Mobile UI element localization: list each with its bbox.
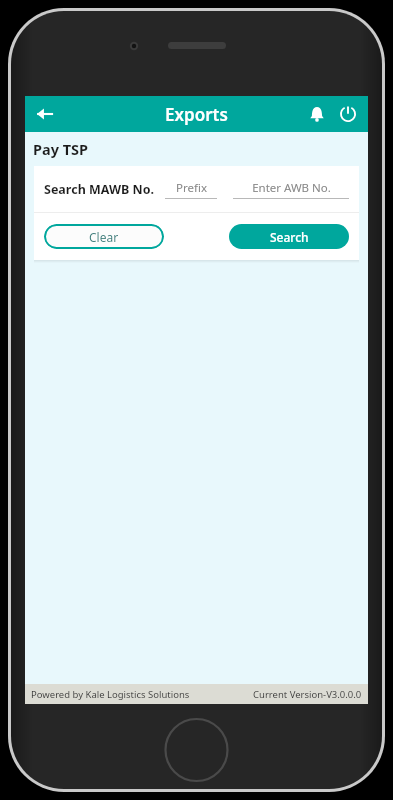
button[interactable]: Logout [332, 96, 364, 132]
staticText: Pay TSP [33, 139, 89, 159]
staticText: Enter AWB No. [252, 180, 331, 196]
staticText: Current Version-V3.0.0.0 [253, 688, 362, 701]
button[interactable]: Search [229, 224, 349, 249]
staticText: Prefix [176, 180, 207, 196]
button[interactable]: Clear [44, 224, 164, 249]
staticText: Clear [89, 229, 119, 245]
staticText: Powered by Kale Logistics Solutions [31, 688, 190, 701]
button[interactable]: Notifications [302, 96, 332, 132]
staticText: Search MAWB No. [44, 181, 155, 198]
button[interactable]: Prefix [165, 179, 217, 196]
button[interactable]: Back [25, 96, 65, 132]
staticText: Exports [165, 103, 228, 126]
staticText: Search [270, 229, 309, 245]
button[interactable]: Enter AWB No. [233, 179, 349, 196]
